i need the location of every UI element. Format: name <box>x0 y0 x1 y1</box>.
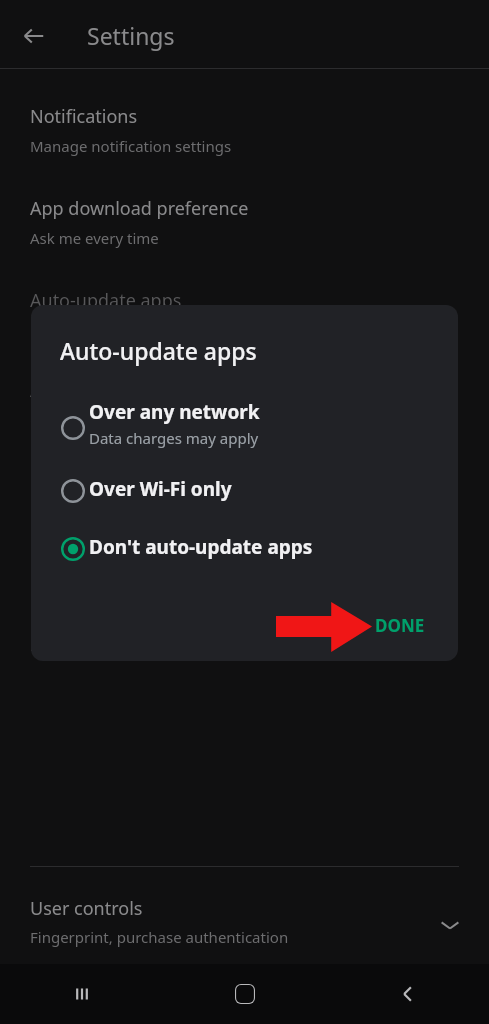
staticText: Remove history in your wishlist, beta pr… <box>30 609 289 652</box>
button[interactable]: Back <box>14 16 54 56</box>
staticText: Auto-update apps <box>30 288 182 313</box>
button[interactable]: Home <box>163 964 326 1024</box>
staticText: Clear local search history <box>30 468 241 493</box>
staticText: Over Wi-Fi only <box>89 476 232 502</box>
button[interactable]: App download preference <box>0 196 489 248</box>
staticText: Remove searches that you have performed … <box>30 500 253 543</box>
staticText: DONE <box>375 614 425 637</box>
button[interactable]: Google Play preferences <box>0 577 489 652</box>
staticText: Notifications <box>30 104 138 129</box>
staticText: Manage notification settings <box>30 136 232 156</box>
staticText: Ask me every time <box>30 228 159 248</box>
staticText: Over Wi-Fi only <box>30 410 136 430</box>
staticText: Data charges may apply <box>89 428 259 448</box>
staticText: Settings <box>87 20 175 51</box>
button[interactable]: Back <box>326 964 489 1024</box>
button[interactable]: Recents <box>0 964 163 1024</box>
button[interactable]: DONE <box>358 605 442 645</box>
staticText: App download preference <box>30 196 249 221</box>
button[interactable]: Clear local search history <box>0 468 489 543</box>
button[interactable]: Over any network <box>31 399 458 461</box>
button[interactable]: Notifications <box>0 104 489 156</box>
staticText: Don't auto-update apps <box>89 534 313 560</box>
button[interactable]: User controls <box>0 886 489 964</box>
button[interactable]: Over Wi-Fi only <box>31 473 458 519</box>
staticText: Fingerprint, purchase authentication <box>30 927 289 947</box>
staticText: Auto-update apps <box>60 335 257 366</box>
button[interactable]: Don't auto-update apps <box>31 531 458 577</box>
staticText: User controls <box>30 896 143 921</box>
button[interactable]: Auto-update apps <box>0 288 489 340</box>
button[interactable]: Auto-play videos <box>0 378 489 430</box>
staticText: Over any network <box>89 399 260 425</box>
